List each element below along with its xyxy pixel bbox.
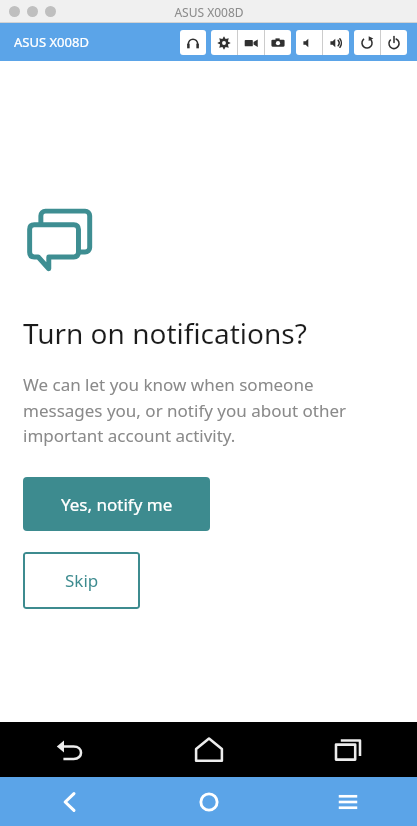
staticText: ASUS X008D	[174, 4, 244, 20]
button[interactable]: Skip	[23, 552, 140, 609]
staticText: Skip	[65, 569, 99, 592]
staticText: We can let you know when someone message…	[23, 373, 397, 447]
staticText: ASUS X008D	[14, 33, 89, 51]
button[interactable]: VOL_DOWN	[296, 30, 322, 55]
button[interactable]: Menu	[278, 777, 417, 826]
staticText: Turn on notifications?	[23, 314, 307, 352]
button[interactable]: POWER	[381, 30, 407, 55]
button[interactable]: ROTATE	[354, 30, 380, 55]
button[interactable]: Home	[139, 777, 278, 826]
button[interactable]: Yes, notify me	[23, 477, 210, 531]
button[interactable]: Recents	[278, 722, 417, 777]
staticText: Yes, notify me	[61, 493, 173, 516]
button[interactable]: Home	[139, 722, 278, 777]
button[interactable]: VIDEO	[238, 30, 264, 55]
button[interactable]: HEADSET	[180, 30, 206, 55]
button[interactable]: VOL_UP	[323, 30, 349, 55]
button[interactable]: Back	[0, 777, 139, 826]
button[interactable]: GEAR	[211, 30, 237, 55]
button[interactable]: Back	[0, 722, 139, 777]
button[interactable]: CAMERA	[265, 30, 291, 55]
